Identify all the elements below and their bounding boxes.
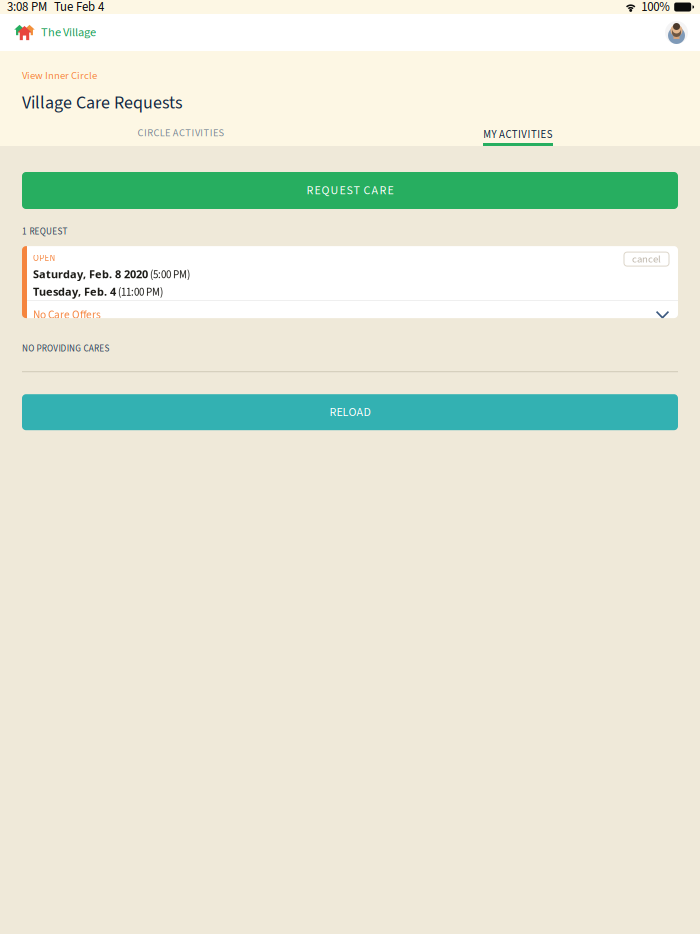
staticText: 100% bbox=[641, 0, 670, 16]
staticText: NO PROVIDING CARES bbox=[22, 342, 109, 355]
button[interactable]: No Care Offers bbox=[27, 301, 678, 329]
staticText: R E Q U E S T C A R E bbox=[306, 182, 393, 199]
staticText: 1 REQUEST bbox=[22, 225, 68, 238]
staticText: R E L O A D bbox=[329, 404, 370, 421]
staticText: cancel bbox=[632, 251, 661, 267]
button[interactable]: R E L O A D bbox=[22, 394, 678, 430]
button[interactable]: CIRCLE ACTIVITIES bbox=[0, 121, 362, 145]
button[interactable]: cancel bbox=[624, 252, 669, 266]
button[interactable]: View Inner Circle bbox=[0, 64, 119, 87]
staticText: CIRCLE ACTIVITIES bbox=[138, 126, 224, 140]
staticText: The Village bbox=[41, 24, 96, 41]
staticText: View Inner Circle bbox=[22, 68, 97, 83]
staticText: 3:08 PM bbox=[7, 0, 47, 16]
button[interactable]: Account bbox=[665, 15, 700, 50]
staticText: No Care Offers bbox=[33, 307, 101, 323]
button[interactable]: R E Q U E S T C A R E bbox=[22, 172, 678, 209]
staticText: OPEN bbox=[33, 252, 56, 265]
staticText: Village Care Requests bbox=[22, 90, 183, 116]
button[interactable]: The Village bbox=[0, 17, 96, 48]
button[interactable]: MY ACTIVITIES bbox=[349, 122, 687, 146]
staticText: Tuesday, Feb. 4 (11:00 PM) bbox=[33, 284, 163, 300]
staticText: Saturday, Feb. 8 2020 (5:00 PM) bbox=[33, 267, 190, 282]
staticText: Tue Feb 4 bbox=[54, 0, 104, 16]
staticText: MY ACTIVITIES bbox=[483, 127, 553, 142]
